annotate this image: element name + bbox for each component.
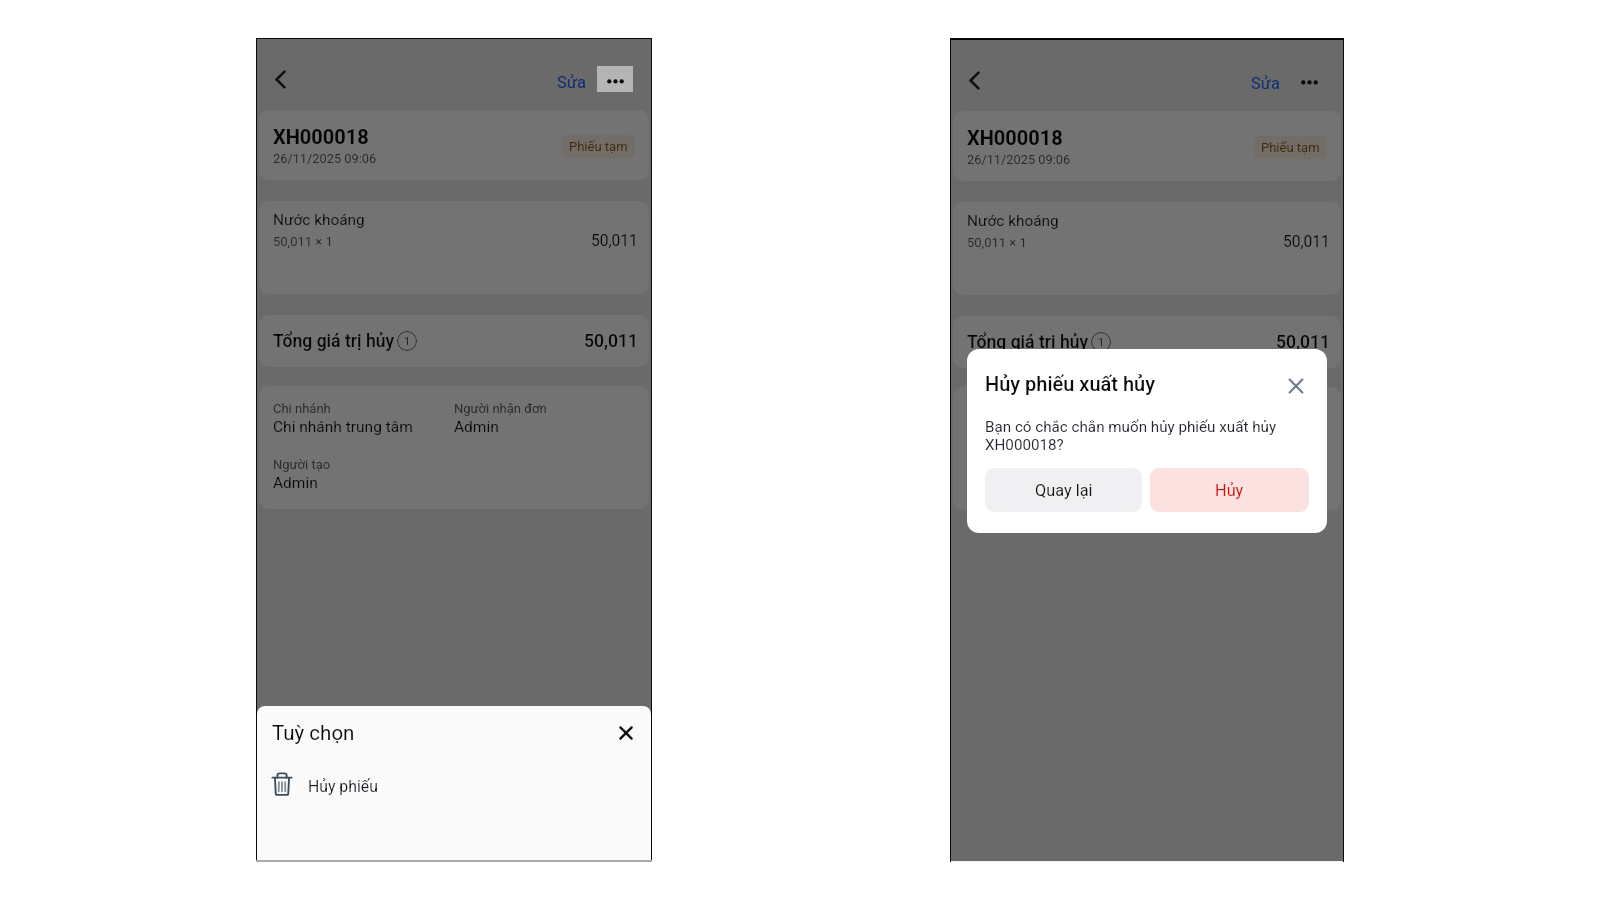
button[interactable]: More options [1291, 67, 1327, 93]
staticText: Sửa [557, 73, 586, 92]
staticText: 50,011 × 1 [967, 235, 1027, 250]
staticText: Chi nhánh trung tâm [273, 418, 413, 436]
button[interactable]: Back [959, 67, 989, 93]
staticText: Quay lại [1035, 481, 1093, 500]
button[interactable]: Quay lại [985, 468, 1142, 512]
button[interactable]: Close [609, 716, 643, 750]
staticText: 1 [404, 335, 411, 348]
staticText: Admin [454, 418, 499, 436]
staticText: Tổng giá trị hủy [967, 332, 1089, 353]
button[interactable]: Back [265, 66, 295, 92]
staticText: Người tạo [273, 457, 331, 472]
staticText: 50,011 [1283, 233, 1330, 251]
button[interactable]: More options [597, 66, 633, 92]
staticText: Hủy phiếu xuất hủy [985, 372, 1155, 395]
staticText: Người tạo [967, 458, 1025, 473]
staticText: 50,011 [1276, 332, 1330, 353]
staticText: 1 [1098, 336, 1105, 349]
staticText: Admin [1147, 419, 1192, 437]
staticText: Tuỳ chọn [272, 721, 355, 745]
staticText: Admin [273, 474, 318, 492]
staticText: Người nhận đơn [454, 401, 547, 416]
staticText: 26/11/2025 09:06 [967, 152, 1071, 167]
button[interactable]: Close dialog [1283, 373, 1309, 399]
button[interactable]: Hủy [1150, 468, 1309, 512]
staticText: Tổng giá trị hủy [273, 331, 395, 352]
button[interactable]: Sửa [1248, 72, 1283, 95]
staticText: 26/11/2025 09:06 [273, 151, 377, 166]
staticText: Chi nhánh trung tâm [967, 419, 1107, 437]
button[interactable]: Sửa [554, 71, 589, 94]
staticText: Sửa [1251, 74, 1280, 93]
staticText: XH000018 [273, 125, 369, 148]
staticText: Nước khoáng [967, 212, 1059, 230]
staticText: 50,011 × 1 [273, 234, 333, 249]
staticText: Chi nhánh [273, 401, 331, 416]
staticText: 50,011 [591, 232, 638, 250]
staticText: Admin [967, 475, 1012, 493]
staticText: Bạn có chắc chắn muốn hủy phiếu xuất hủy… [985, 418, 1309, 454]
staticText: Hủy phiếu [308, 777, 378, 796]
staticText: XH000018 [967, 126, 1063, 149]
staticText: Nước khoáng [273, 211, 365, 229]
button[interactable]: Hủy phiếu [257, 760, 651, 812]
staticText: Phiếu tạm [1261, 140, 1320, 155]
staticText: 50,011 [584, 331, 638, 352]
staticText: Hủy [1215, 481, 1244, 500]
staticText: Phiếu tạm [569, 139, 628, 154]
